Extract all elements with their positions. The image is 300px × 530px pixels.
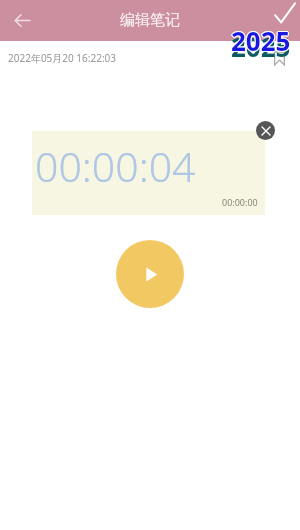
button[interactable]: Back: [0, 0, 44, 41]
staticText: 2022年05月20 16:22:03: [8, 51, 117, 65]
staticText: 2025: [231, 22, 291, 54]
staticText: 2025: [232, 23, 292, 55]
button[interactable]: Delete timer: [256, 121, 275, 140]
button[interactable]: Bookmark: [267, 46, 291, 70]
staticText: 2025: [230, 23, 290, 55]
button[interactable]: 00:00:04: [32, 131, 265, 215]
staticText: 2025: [231, 29, 291, 61]
staticText: 2025: [231, 23, 291, 55]
staticText: 00:00:04: [35, 138, 196, 194]
button[interactable]: Play: [116, 240, 184, 308]
button[interactable]: Save: [260, 0, 300, 41]
staticText: 编辑笔记: [120, 11, 180, 30]
staticText: 2025: [231, 24, 291, 56]
staticText: 00:00:00: [222, 196, 258, 208]
